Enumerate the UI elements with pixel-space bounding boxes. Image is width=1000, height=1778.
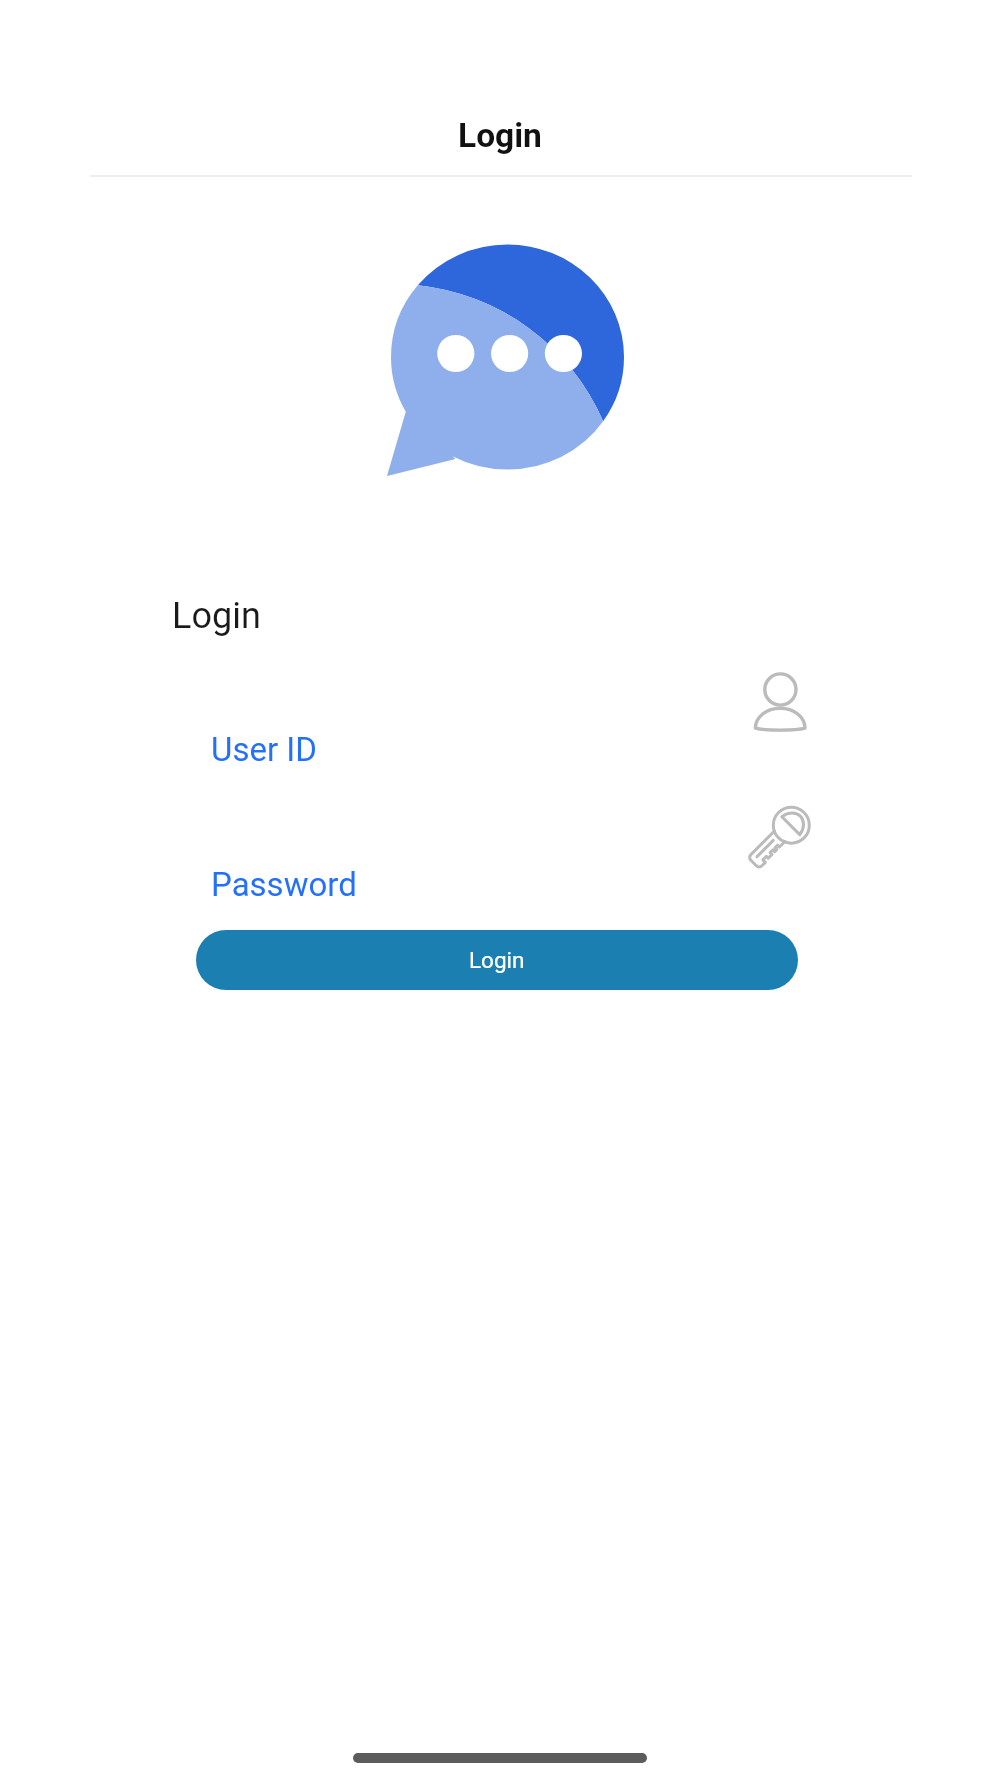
other: Password bbox=[745, 795, 819, 875]
button[interactable]: User ID bbox=[196, 690, 800, 780]
staticText: Login bbox=[172, 595, 261, 637]
button[interactable]: Login bbox=[196, 930, 798, 990]
staticText: User ID bbox=[211, 730, 317, 769]
staticText: Password bbox=[211, 865, 357, 904]
other: User bbox=[748, 660, 816, 740]
button[interactable]: Password bbox=[196, 825, 800, 915]
staticText: Login bbox=[469, 947, 525, 973]
staticText: Login bbox=[458, 116, 542, 155]
